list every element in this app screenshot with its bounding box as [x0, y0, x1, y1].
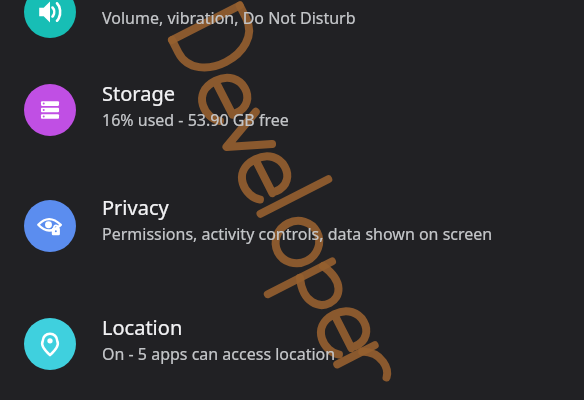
- other: Privacy: [24, 200, 76, 252]
- staticText: Volume, vibration, Do Not Disturb: [102, 7, 356, 29]
- button[interactable]: Sound: [0, 0, 584, 76]
- staticText: Storage: [102, 80, 175, 107]
- other: Location: [24, 318, 76, 370]
- staticText: On - 5 apps can access location: [102, 343, 336, 365]
- staticText: Location: [102, 314, 183, 341]
- staticText: 16% used - 53.90 GB free: [102, 109, 289, 131]
- button[interactable]: Location: [0, 318, 584, 400]
- other: Storage: [24, 84, 76, 136]
- button[interactable]: Privacy: [0, 196, 584, 318]
- other: Sound: [24, 0, 76, 38]
- staticText: Privacy: [102, 194, 169, 221]
- staticText: Permissions, activity controls, data sho…: [102, 223, 493, 245]
- button[interactable]: Storage: [0, 84, 584, 196]
